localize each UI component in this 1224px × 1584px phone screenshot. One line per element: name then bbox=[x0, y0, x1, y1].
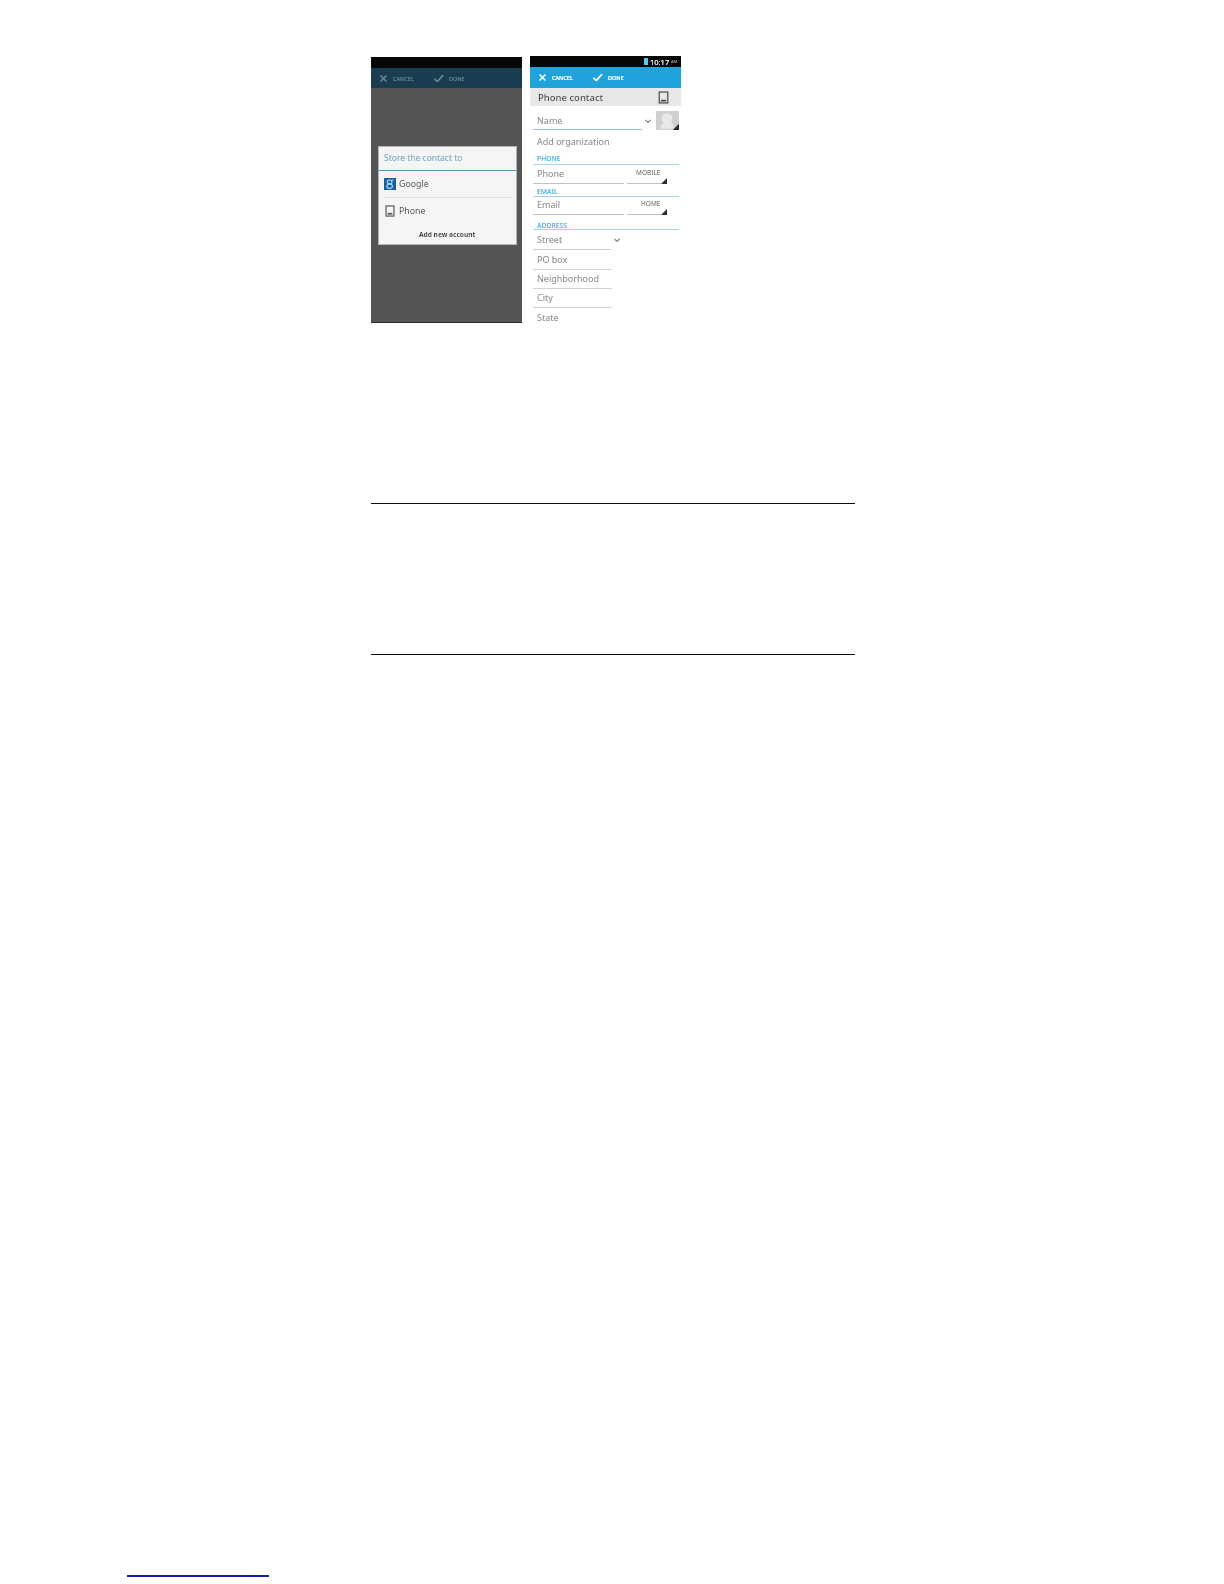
other: Done bbox=[432, 72, 445, 85]
staticText: PO box bbox=[537, 253, 568, 265]
staticText: DONE bbox=[608, 74, 624, 81]
staticText: Name bbox=[537, 114, 563, 126]
staticText: AM bbox=[671, 59, 678, 64]
button[interactable]: Add contact photo bbox=[656, 111, 679, 130]
staticText: PHONE bbox=[537, 154, 561, 163]
button[interactable]: Cancel bbox=[371, 68, 416, 88]
button[interactable]: City bbox=[530, 291, 681, 310]
other: Done bbox=[591, 71, 604, 84]
staticText: Store the contact to bbox=[384, 152, 463, 164]
staticText: EMAIL bbox=[537, 187, 558, 196]
staticText: DONE bbox=[449, 75, 465, 82]
staticText: ADDRESS bbox=[537, 221, 567, 230]
button[interactable]: Done bbox=[432, 68, 469, 88]
button[interactable]: Phone bbox=[378, 198, 517, 224]
button[interactable]: Phone contact bbox=[530, 88, 681, 106]
staticText: HOME bbox=[641, 199, 661, 208]
staticText: Street bbox=[537, 233, 563, 245]
button[interactable]: Street bbox=[530, 233, 681, 252]
staticText: Phone bbox=[399, 205, 426, 217]
staticText: MOBILE bbox=[636, 168, 661, 177]
button[interactable]: Email bbox=[530, 198, 681, 215]
staticText: City bbox=[537, 291, 553, 303]
button[interactable]: Add new account bbox=[378, 224, 517, 245]
staticText: Neighborhood bbox=[537, 272, 600, 284]
other: Cancel bbox=[537, 72, 548, 83]
staticText: State bbox=[537, 311, 559, 323]
staticText: CANCEL bbox=[552, 74, 573, 81]
button[interactable]: Google bbox=[378, 171, 517, 197]
staticText: Add new account bbox=[419, 230, 476, 239]
button[interactable]: Done bbox=[591, 67, 628, 88]
button[interactable]: PO box bbox=[530, 253, 681, 272]
staticText: 10:17 bbox=[650, 57, 670, 67]
staticText: CANCEL bbox=[393, 75, 414, 82]
button[interactable]: Cancel bbox=[530, 67, 575, 88]
staticText: Phone bbox=[537, 167, 565, 179]
button[interactable]: Neighborhood bbox=[530, 272, 681, 291]
staticText: Google bbox=[399, 178, 429, 190]
staticText: Add organization bbox=[537, 135, 610, 147]
button[interactable]: Phone bbox=[530, 167, 681, 184]
other: Cancel bbox=[378, 73, 389, 84]
staticText: Phone contact bbox=[538, 91, 604, 104]
button[interactable]: Add organization bbox=[530, 135, 681, 148]
staticText: Email bbox=[537, 198, 561, 210]
